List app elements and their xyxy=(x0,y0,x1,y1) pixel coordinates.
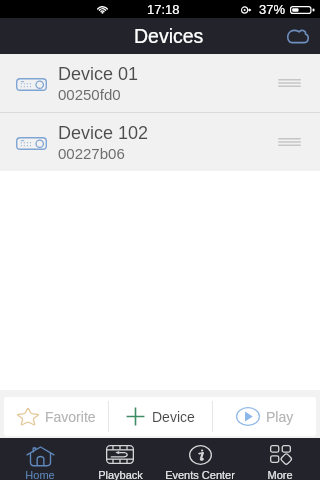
button[interactable]: More xyxy=(240,438,320,480)
button[interactable]: Device xyxy=(109,397,212,436)
staticText: 00227b06 xyxy=(58,145,125,162)
staticText: Devices xyxy=(134,25,204,47)
button[interactable]: Device 01 xyxy=(0,54,320,112)
button[interactable]: Events Center xyxy=(160,438,240,480)
staticText: Favorite xyxy=(45,409,96,425)
staticText: Home xyxy=(25,469,55,480)
staticText: More xyxy=(267,469,293,480)
button[interactable]: Playback xyxy=(80,438,160,480)
staticText: Device 102 xyxy=(58,123,149,143)
staticText: Device 01 xyxy=(58,64,139,84)
staticText: Playback xyxy=(98,469,143,480)
button[interactable]: Device 102 xyxy=(0,113,320,171)
button[interactable]: Home xyxy=(0,438,80,480)
staticText: Device xyxy=(152,409,195,425)
button[interactable]: Cloud xyxy=(279,18,315,54)
staticText: 17:18 xyxy=(147,2,180,17)
staticText: 00250fd0 xyxy=(58,86,121,103)
button[interactable]: Favorite xyxy=(4,397,108,436)
button[interactable]: Play xyxy=(213,397,316,436)
staticText: 37% xyxy=(259,2,286,17)
staticText: Events Center xyxy=(165,469,235,480)
staticText: Play xyxy=(266,409,294,425)
